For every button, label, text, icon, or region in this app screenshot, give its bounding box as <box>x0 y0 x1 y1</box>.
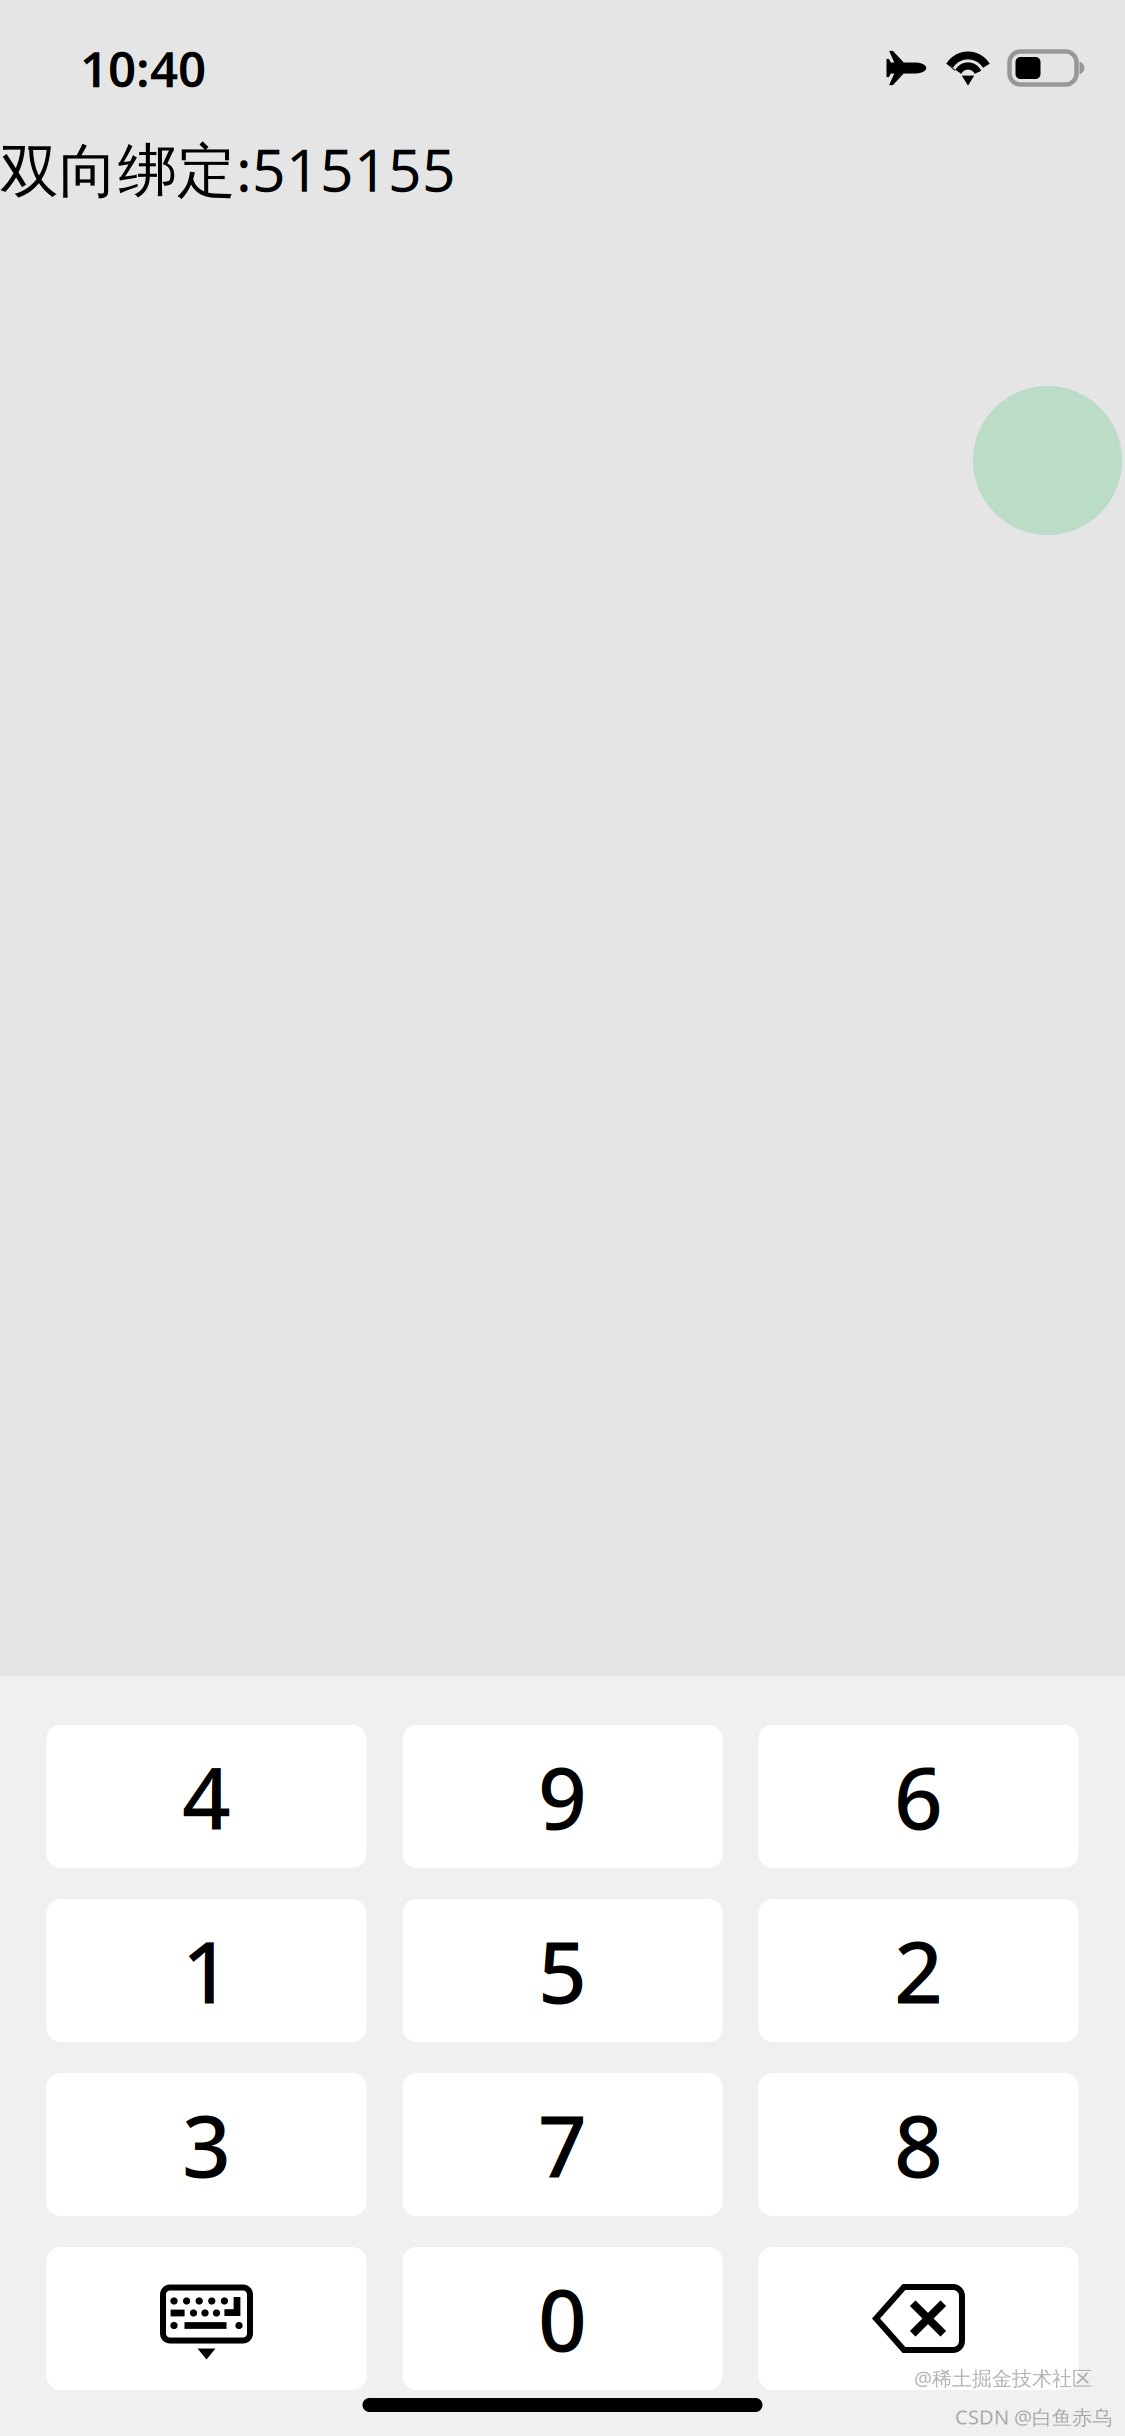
button[interactable]: 2 <box>758 1899 1078 2042</box>
button[interactable]: 9 <box>402 1725 722 1868</box>
button[interactable]: Hide keyboard <box>46 2247 366 2390</box>
staticText: 8 <box>894 2088 943 2201</box>
staticText: CSDN @白鱼赤乌 <box>955 2403 1112 2430</box>
button[interactable]: 4 <box>46 1725 366 1868</box>
button[interactable]: 3 <box>46 2073 366 2216</box>
staticText: 1 <box>182 1914 231 2027</box>
button[interactable]: 5 <box>402 1899 722 2042</box>
button[interactable]: Delete <box>758 2247 1078 2390</box>
button[interactable]: 7 <box>402 2073 722 2216</box>
button[interactable]: 1 <box>46 1899 366 2042</box>
staticText: @稀土掘金技术社区 <box>914 2365 1092 2391</box>
staticText: 3 <box>182 2088 231 2201</box>
button[interactable]: 6 <box>758 1725 1078 1868</box>
staticText: 4 <box>182 1740 231 1853</box>
staticText: 7 <box>538 2088 587 2201</box>
staticText: 10:40 <box>80 35 206 101</box>
staticText: 2 <box>894 1914 943 2027</box>
staticText: 9 <box>538 1740 587 1853</box>
staticText: 5 <box>538 1914 587 2027</box>
staticText: 双向绑定:515155 <box>0 130 456 208</box>
staticText: 6 <box>894 1740 943 1853</box>
button[interactable]: 0 <box>402 2247 722 2390</box>
staticText: 0 <box>538 2262 587 2375</box>
button[interactable]: 8 <box>758 2073 1078 2216</box>
